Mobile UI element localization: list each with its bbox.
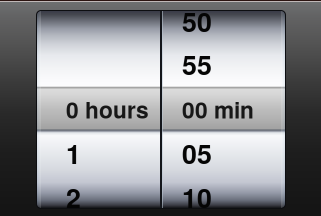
staticText: 05 xyxy=(182,134,212,172)
staticText: 00 min xyxy=(182,93,254,125)
button[interactable]: Duration picker xyxy=(36,10,286,209)
staticText: 0 hours xyxy=(66,93,149,125)
staticText: 1 xyxy=(66,134,81,172)
staticText: 10 xyxy=(182,178,212,216)
staticText: 55 xyxy=(182,45,212,83)
staticText: 2 xyxy=(66,178,81,216)
staticText: 50 xyxy=(182,2,212,40)
